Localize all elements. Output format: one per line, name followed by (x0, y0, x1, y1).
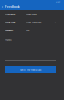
staticText: Feedback (5, 28, 13, 32)
button[interactable]: Back (1, 5, 4, 9)
staticText: › (55, 20, 56, 24)
button[interactable]: Feedback (0, 26, 64, 34)
button[interactable]: Send my feedback (5, 66, 56, 73)
staticText: Username (5, 12, 15, 16)
button[interactable]: Username (0, 10, 64, 18)
staticText: Thanks! (5, 38, 12, 41)
staticText: Feedback (5, 5, 20, 9)
staticText: 4:57 (56, 1, 60, 3)
staticText: User Interface (26, 20, 41, 24)
button[interactable]: Issue type (0, 18, 64, 26)
staticText: Send my feedback (20, 68, 41, 71)
staticText: Issue type (5, 20, 15, 24)
staticText: mobileuser (26, 12, 37, 16)
staticText: 240 (26, 28, 29, 32)
staticText: ‹ (2, 5, 3, 9)
